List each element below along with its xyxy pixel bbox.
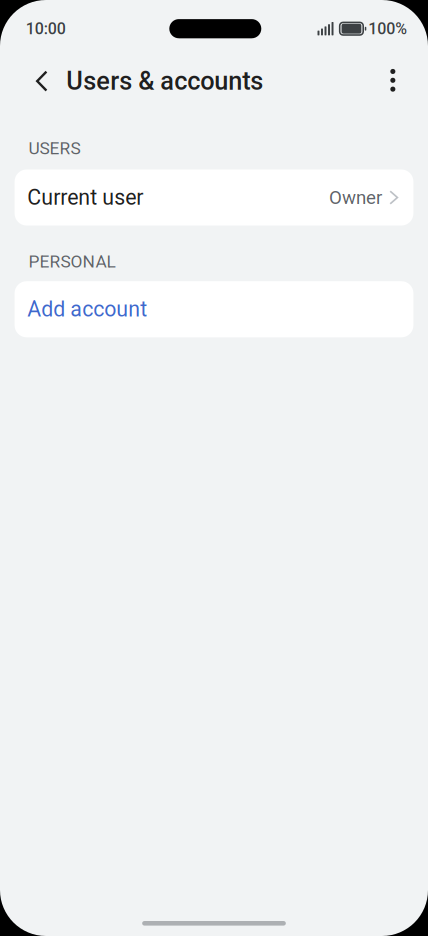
staticText: Owner: [329, 187, 382, 208]
button[interactable]: More options: [365, 58, 428, 104]
button[interactable]: Current user: [0, 169, 428, 225]
button[interactable]: Back: [0, 58, 66, 104]
button[interactable]: Add account: [0, 281, 428, 337]
staticText: 100%: [368, 19, 407, 38]
staticText: Users & accounts: [66, 66, 263, 96]
staticText: 10:00: [26, 19, 66, 38]
staticText: PERSONAL: [28, 251, 115, 272]
staticText: Add account: [27, 297, 147, 322]
staticText: USERS: [28, 138, 80, 158]
staticText: Current user: [27, 185, 143, 210]
